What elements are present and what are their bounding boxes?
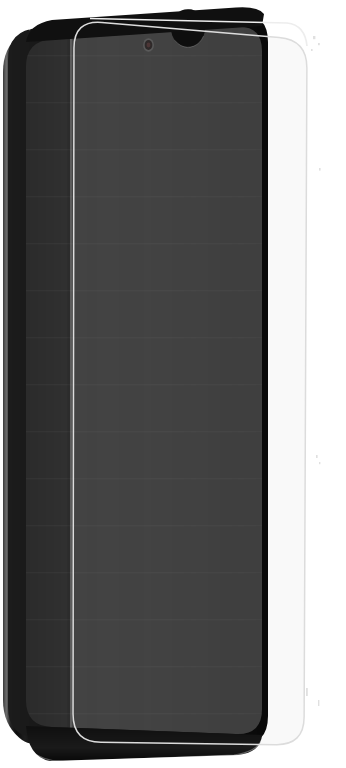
button[interactable]: Smartphone with tempered glass screen pr… <box>0 0 346 768</box>
